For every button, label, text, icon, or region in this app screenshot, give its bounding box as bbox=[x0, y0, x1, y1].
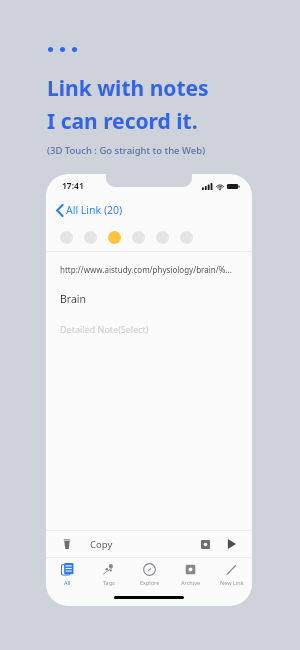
button[interactable]: Tags bbox=[88, 558, 129, 592]
button[interactable]: Copy bbox=[90, 538, 113, 551]
staticText: Explore bbox=[140, 579, 160, 586]
button[interactable]: New Link bbox=[211, 558, 252, 592]
button[interactable]: Color tag 5 bbox=[156, 231, 169, 244]
staticText: All bbox=[64, 579, 71, 586]
staticText: Link with notes bbox=[47, 74, 209, 103]
staticText: All Link (20) bbox=[66, 203, 123, 217]
staticText: Archive bbox=[181, 579, 201, 586]
button[interactable]: Color tag 3 bbox=[108, 231, 121, 244]
button[interactable]: All Link (20) bbox=[46, 198, 252, 222]
button[interactable]: All bbox=[46, 558, 88, 592]
button[interactable]: Color tag 2 bbox=[84, 231, 97, 244]
staticText: Copy bbox=[90, 538, 113, 551]
button[interactable]: Color tag 4 bbox=[132, 231, 145, 244]
staticText: Tags bbox=[103, 579, 115, 586]
staticText: Brain bbox=[60, 292, 87, 306]
button[interactable]: Color tag 6 bbox=[180, 231, 193, 244]
staticText: I can record it. bbox=[47, 107, 198, 136]
button[interactable]: Explore bbox=[129, 558, 170, 592]
staticText: Detailed Note(Select) bbox=[60, 323, 149, 335]
button[interactable]: Color tag 1 bbox=[60, 231, 73, 244]
staticText: http://www.aistudy.com/physiology/brain/… bbox=[60, 264, 232, 275]
staticText: 17:41 bbox=[62, 180, 84, 192]
button[interactable]: Play bbox=[222, 535, 240, 553]
staticText: (3D Touch : Go straight to the Web) bbox=[47, 144, 206, 157]
button[interactable]: Delete bbox=[58, 535, 76, 553]
staticText: New Link bbox=[220, 579, 244, 586]
button[interactable]: Archive bbox=[196, 535, 214, 553]
button[interactable]: Archive bbox=[170, 558, 211, 592]
